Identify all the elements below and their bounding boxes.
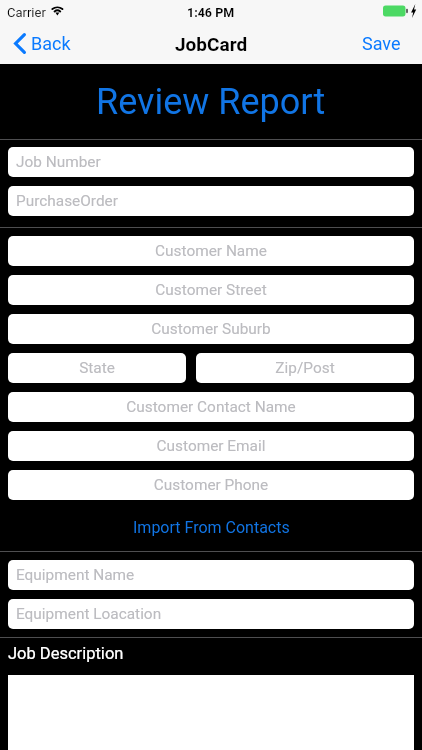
- staticText: Customer Name: [16, 242, 406, 260]
- other: Wi-Fi signal: [49, 2, 67, 20]
- staticText: JobCard: [175, 33, 248, 55]
- staticText: Customer Suburb: [16, 320, 406, 338]
- button[interactable]: Customer Contact Name: [8, 392, 414, 422]
- button[interactable]: Equipment Name: [8, 560, 414, 590]
- button[interactable]: Save: [341, 24, 422, 63]
- button[interactable]: Customer Suburb: [8, 314, 414, 344]
- button[interactable]: Customer Email: [8, 431, 414, 461]
- staticText: Equipment Name: [16, 566, 406, 584]
- button[interactable]: Zip/Post: [196, 353, 414, 383]
- staticText: State: [16, 359, 178, 377]
- staticText: Save: [362, 33, 401, 54]
- button[interactable]: State: [8, 353, 186, 383]
- staticText: PurchaseOrder: [16, 192, 406, 210]
- button[interactable]: Import From Contacts: [0, 500, 422, 551]
- button[interactable]: PurchaseOrder: [8, 186, 414, 216]
- staticText: Customer Street: [16, 281, 406, 299]
- staticText: Import From Contacts: [133, 518, 290, 537]
- button[interactable]: Equipment Loacation: [8, 599, 414, 629]
- staticText: Customer Contact Name: [16, 398, 406, 416]
- button[interactable]: Back: [0, 24, 81, 63]
- staticText: Customer Phone: [16, 476, 406, 494]
- staticText: Zip/Post: [204, 359, 406, 377]
- staticText: Carrier: [7, 5, 46, 20]
- staticText: Equipment Loacation: [16, 605, 406, 623]
- staticText: Job Description: [8, 644, 124, 663]
- staticText: Customer Email: [16, 437, 406, 455]
- staticText: 1:46 PM: [187, 5, 235, 20]
- button[interactable]: Job Number: [8, 147, 414, 177]
- staticText: Review Report: [96, 81, 326, 123]
- button[interactable]: Customer Phone: [8, 470, 414, 500]
- button[interactable]: Customer Name: [8, 236, 414, 266]
- button[interactable]: Customer Street: [8, 275, 414, 305]
- staticText: Job Number: [16, 153, 406, 171]
- other: Battery charging: [383, 4, 417, 18]
- staticText: Back: [31, 33, 71, 54]
